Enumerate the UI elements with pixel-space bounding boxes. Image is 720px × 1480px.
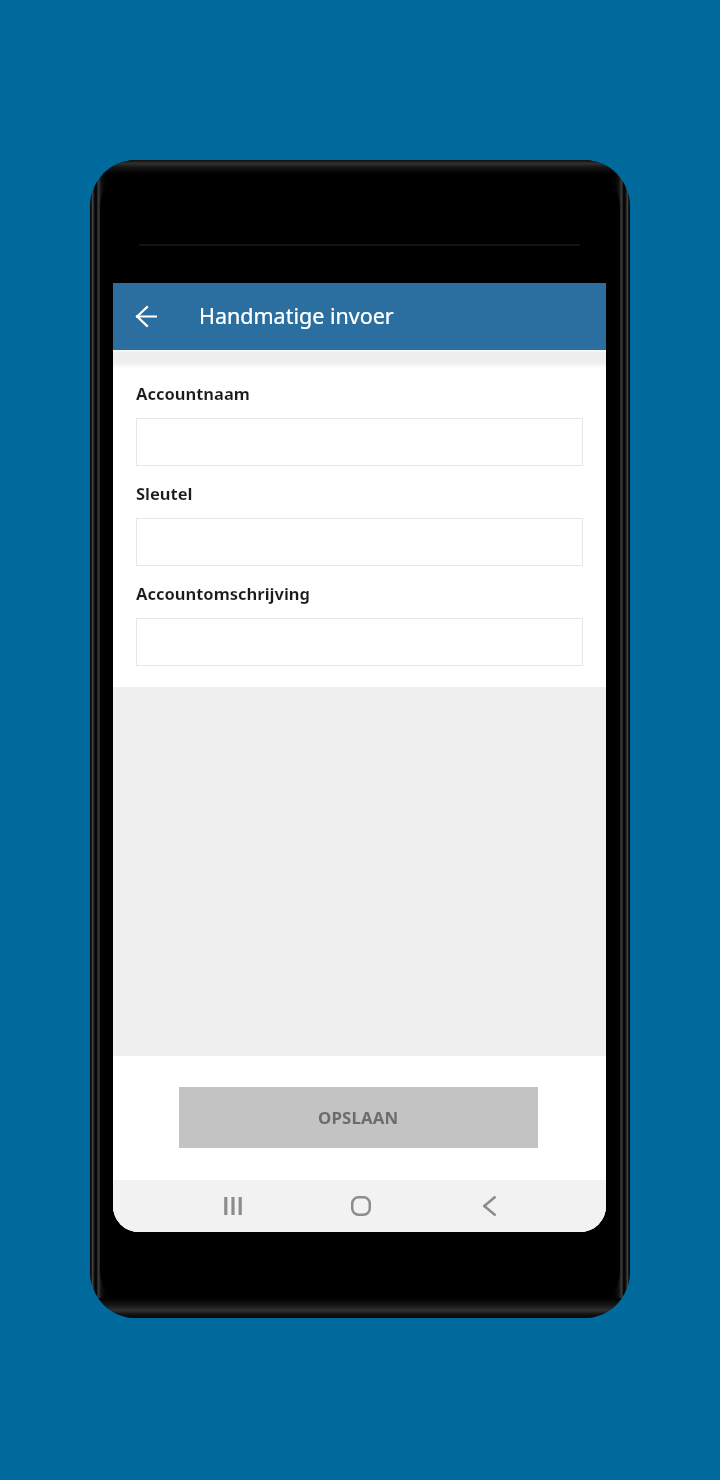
button[interactable]: Recente apps [201, 1180, 265, 1232]
button[interactable] [136, 418, 583, 466]
button[interactable]: OPSLAAN [179, 1087, 538, 1148]
staticText: Handmatige invoer [199, 301, 394, 330]
staticText: OPSLAAN [318, 1106, 399, 1129]
button[interactable]: Home [329, 1180, 393, 1232]
button[interactable] [136, 518, 583, 566]
staticText: Accountnaam [136, 382, 250, 404]
button[interactable] [136, 618, 583, 666]
button[interactable]: Terug [118, 283, 174, 350]
staticText: Sleutel [136, 482, 193, 504]
staticText: Accountomschrijving [136, 582, 311, 604]
button[interactable]: Terug [457, 1180, 521, 1232]
